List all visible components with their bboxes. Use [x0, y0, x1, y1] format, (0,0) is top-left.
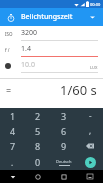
button[interactable]: More options [86, 11, 98, 23]
staticText: 1.4 [21, 44, 31, 54]
button[interactable]: 2 [25, 108, 51, 123]
button[interactable]: 10.0 [0, 58, 103, 74]
button[interactable]: 3 [51, 108, 77, 123]
staticText: LUX [90, 65, 98, 70]
staticText: 2 [35, 110, 41, 122]
staticText: 10.0 [21, 60, 35, 70]
button[interactable]: Switch keyboard [77, 170, 103, 183]
staticText: 9 [61, 140, 67, 152]
button[interactable]: . [0, 154, 25, 170]
button[interactable]: 0 [25, 154, 51, 170]
staticText: . [11, 157, 14, 168]
button[interactable]: Home [25, 170, 51, 183]
button[interactable]: f / [0, 42, 103, 58]
staticText: Deutsch [56, 159, 72, 164]
button[interactable]: Exposure time [5, 12, 16, 23]
button[interactable]: Recents [51, 170, 77, 183]
button[interactable]: Delete [77, 138, 103, 154]
staticText: 3200 [21, 28, 38, 38]
staticText: - [89, 110, 92, 121]
staticText: 00:00 [90, 2, 101, 7]
button[interactable]: Deutsch [51, 154, 77, 170]
button[interactable]: Enter [77, 154, 103, 170]
staticText: ISO [5, 31, 13, 37]
button[interactable]: Back [0, 170, 25, 183]
staticText: 1/60 s [60, 81, 97, 99]
staticText: , [89, 125, 92, 136]
button[interactable]: 6 [51, 123, 77, 138]
staticText: 1 [10, 110, 16, 122]
staticText: f / [5, 47, 10, 53]
staticText: 6 [61, 125, 67, 137]
button[interactable]: 5 [25, 123, 51, 138]
button[interactable]: - [77, 108, 103, 123]
button[interactable]: 1 [0, 108, 25, 123]
button[interactable]: 8 [25, 138, 51, 154]
button[interactable]: , [77, 123, 103, 138]
staticText: 0 [35, 156, 41, 168]
button[interactable]: 4 [0, 123, 25, 138]
staticText: 7 [10, 140, 16, 152]
staticText: Belichtungszeit [21, 12, 73, 22]
staticText: 8 [35, 140, 41, 152]
staticText: 5 [35, 125, 41, 137]
button[interactable]: 9 [51, 138, 77, 154]
button[interactable]: 7 [0, 138, 25, 154]
staticText: 4 [10, 125, 16, 137]
button[interactable]: ISO [0, 26, 103, 42]
staticText: 3 [61, 110, 67, 122]
staticText: = [6, 84, 12, 96]
